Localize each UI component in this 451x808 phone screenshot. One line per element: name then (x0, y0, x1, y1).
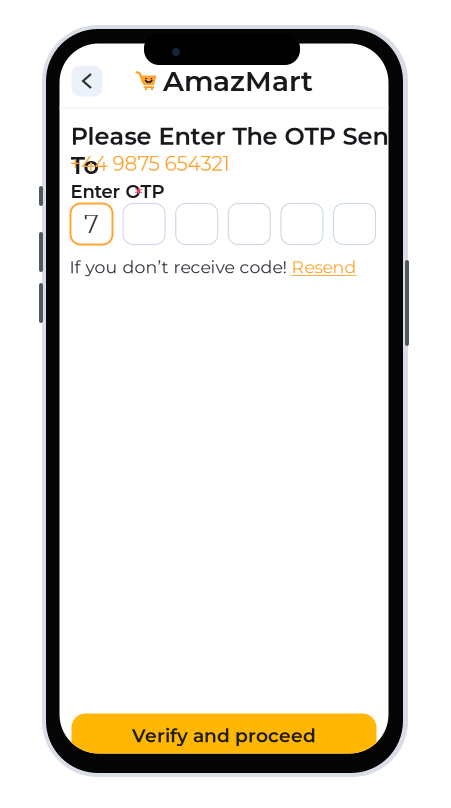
staticText: Please Enter The OTP Sent To (70, 121, 398, 180)
staticText: Verify and proceed (132, 724, 316, 747)
button[interactable]: Resend (291, 256, 356, 278)
staticText: 7 (84, 209, 99, 239)
staticText: +44 9875 654321 (69, 151, 229, 176)
button[interactable]: Back (71, 65, 102, 96)
button[interactable]: Verify and proceed (71, 713, 376, 757)
staticText: If you don’t receive code! (69, 256, 287, 278)
staticText: Resend (291, 256, 356, 278)
staticText: AmazMart (163, 64, 313, 98)
staticText: * (134, 181, 142, 207)
staticText: Enter OTP (70, 180, 164, 202)
